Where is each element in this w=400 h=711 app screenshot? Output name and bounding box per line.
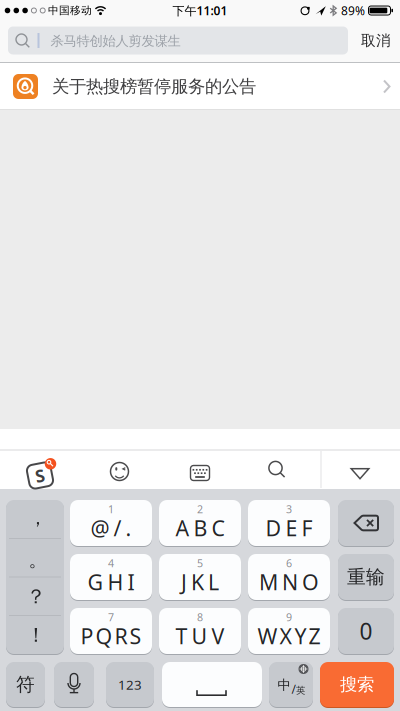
button[interactable]: 123 [106,662,154,707]
button[interactable]: 重输 [338,554,394,600]
staticText: W X Y Z [257,622,320,650]
staticText: ， [28,506,47,529]
button[interactable]: ， [6,500,64,538]
button[interactable]: 2 [159,500,241,546]
staticText: 4 [108,556,114,570]
staticText: 0 [359,616,372,646]
button[interactable]: 3 [248,500,330,546]
staticText: 2 [197,502,203,516]
staticText: 关于热搜榜暂停服务的公告 [52,76,256,97]
button[interactable] [255,448,299,492]
staticText: M N O [259,568,319,596]
button[interactable]: 4 [70,554,152,600]
button[interactable] [54,662,94,707]
staticText: S [35,464,45,487]
staticText: 搜索 [340,674,374,695]
button[interactable]: 。 [6,538,64,577]
staticText: 3 [286,502,292,516]
button[interactable]: 0 [338,608,394,654]
staticText: 9 [286,610,292,624]
button[interactable]: 1 [70,500,152,546]
staticText: A B C [175,514,224,542]
button[interactable]: 符 [6,662,45,707]
button[interactable]: 中 [269,662,313,707]
staticText: 89% [341,2,365,18]
staticText: 中国移动 [48,4,92,17]
staticText: P Q R S [80,622,141,650]
staticText: 符 [16,673,35,696]
staticText: ？ [26,584,46,609]
staticText: 杀马特创始人剪发谋生 [50,33,180,49]
staticText: 1 [108,502,114,516]
button[interactable]: 搜索 [320,662,394,707]
button[interactable] [338,451,382,495]
staticText: ！ [26,623,46,647]
button[interactable]: 取消 [352,25,400,55]
button[interactable] [338,500,394,546]
staticText: 中 [277,677,290,693]
button[interactable] [162,662,262,707]
button[interactable] [97,449,141,493]
staticText: G H I [87,568,134,596]
staticText: @ / . [90,514,131,542]
button[interactable]: 8 [159,608,241,654]
button[interactable]: 9 [248,608,330,654]
staticText: J K L [181,568,219,596]
button[interactable]: 7 [70,608,152,654]
staticText: 下午11:01 [172,2,227,18]
staticText: / [291,681,295,697]
staticText: 取消 [361,31,391,49]
button[interactable]: 6 [248,554,330,600]
staticText: 5 [197,556,203,570]
button[interactable]: 5 [159,554,241,600]
button[interactable]: ！ [6,615,64,654]
staticText: 英 [296,685,305,696]
staticText: 123 [118,676,142,693]
staticText: 6 [286,556,292,570]
staticText: D E F [265,514,312,542]
staticText: T U V [175,622,224,650]
button[interactable]: 关于热搜榜暂停服务的公告 [0,63,400,109]
staticText: 。 [28,548,47,571]
staticText: 重输 [347,565,385,588]
button[interactable]: ？ [6,577,64,615]
staticText: 7 [108,610,114,624]
button[interactable]: 杀马特创始人剪发谋生 [8,26,348,54]
staticText: 8 [197,610,203,624]
button[interactable]: S [16,451,64,495]
button[interactable] [178,451,222,495]
